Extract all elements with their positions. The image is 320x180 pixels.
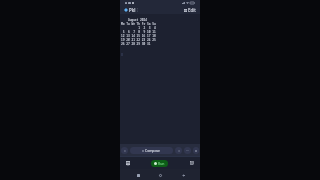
staticText: 19 20 21 22 23 24 25 [121, 38, 156, 42]
staticText: Edit [188, 7, 196, 13]
button[interactable]: Back [178, 170, 188, 180]
button[interactable]: Home [155, 170, 165, 180]
staticText: 5 6 7 8 9 10 11 [121, 30, 156, 34]
staticText: Run [158, 161, 165, 166]
staticText: Compose [145, 148, 161, 153]
button[interactable]: Next [175, 147, 182, 154]
button[interactable]: Compose [130, 147, 173, 154]
staticText: Mo Tu We Th Fr Sa Su [121, 22, 156, 26]
staticText: 26 27 28 29 30 31 [121, 42, 151, 46]
button[interactable]: Close [193, 147, 199, 154]
staticText: 12 13 14 15 16 17 18 [121, 34, 156, 38]
button[interactable]: Pkl [123, 6, 139, 14]
button[interactable]: More [184, 147, 191, 154]
staticText: Pkl [129, 7, 136, 13]
button[interactable]: Previous [121, 147, 128, 154]
button[interactable]: Keyboard [188, 159, 196, 167]
staticText: 1 2 3 4 [121, 26, 156, 30]
button[interactable]: Recent apps [133, 170, 143, 180]
button[interactable]: Edit [183, 6, 197, 14]
staticText: August 2024 [121, 18, 148, 22]
button[interactable]: Run [151, 160, 168, 167]
button[interactable]: Save [124, 159, 132, 167]
